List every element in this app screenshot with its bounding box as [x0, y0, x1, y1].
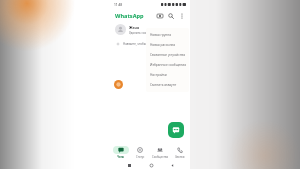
staticText: Связанные устройства — [150, 53, 185, 57]
button[interactable]: Новая группа — [146, 30, 189, 40]
staticText: Статус — [136, 155, 145, 159]
staticText: Удалить сообщ. — [129, 31, 152, 35]
button[interactable]: Recents — [125, 161, 133, 169]
staticText: 11:48 — [114, 3, 123, 7]
staticText: Сообщества — [152, 155, 168, 159]
staticText: Новая группа — [150, 33, 171, 37]
button[interactable]: Статус — [130, 144, 150, 160]
button[interactable]: Новая рассылка — [146, 40, 189, 50]
button[interactable]: Чаты — [111, 144, 130, 160]
button[interactable]: Home — [147, 161, 155, 169]
staticText: Нажмите, чтобы — [123, 42, 146, 46]
staticText: Новая рассылка — [150, 43, 176, 47]
button[interactable]: Back — [168, 161, 176, 169]
staticText: Настройки — [150, 73, 167, 77]
button[interactable]: Camera — [156, 12, 164, 20]
button[interactable]: New chat — [168, 122, 184, 138]
button[interactable]: Звонки — [170, 144, 190, 160]
button[interactable]: Search — [167, 12, 175, 20]
button[interactable]: Связанные устройства — [146, 50, 189, 60]
button[interactable]: Сообщества — [150, 144, 170, 160]
staticText: Жена — [129, 25, 140, 30]
button[interactable]: Нажмите, чтобы — [111, 37, 190, 50]
button[interactable]: More options — [178, 12, 186, 20]
staticText: WhatsApp — [115, 12, 144, 20]
staticText: Звонки — [175, 155, 185, 159]
staticText: Сменить аккаунт — [150, 83, 177, 87]
staticText: Избранные сообщения — [150, 63, 187, 67]
button[interactable]: Сменить аккаунт — [146, 80, 189, 90]
button[interactable]: Жена — [111, 22, 190, 37]
button[interactable]: Настройки — [146, 70, 189, 80]
staticText: Чаты — [117, 155, 125, 159]
button[interactable]: Избранные сообщения — [146, 60, 189, 70]
